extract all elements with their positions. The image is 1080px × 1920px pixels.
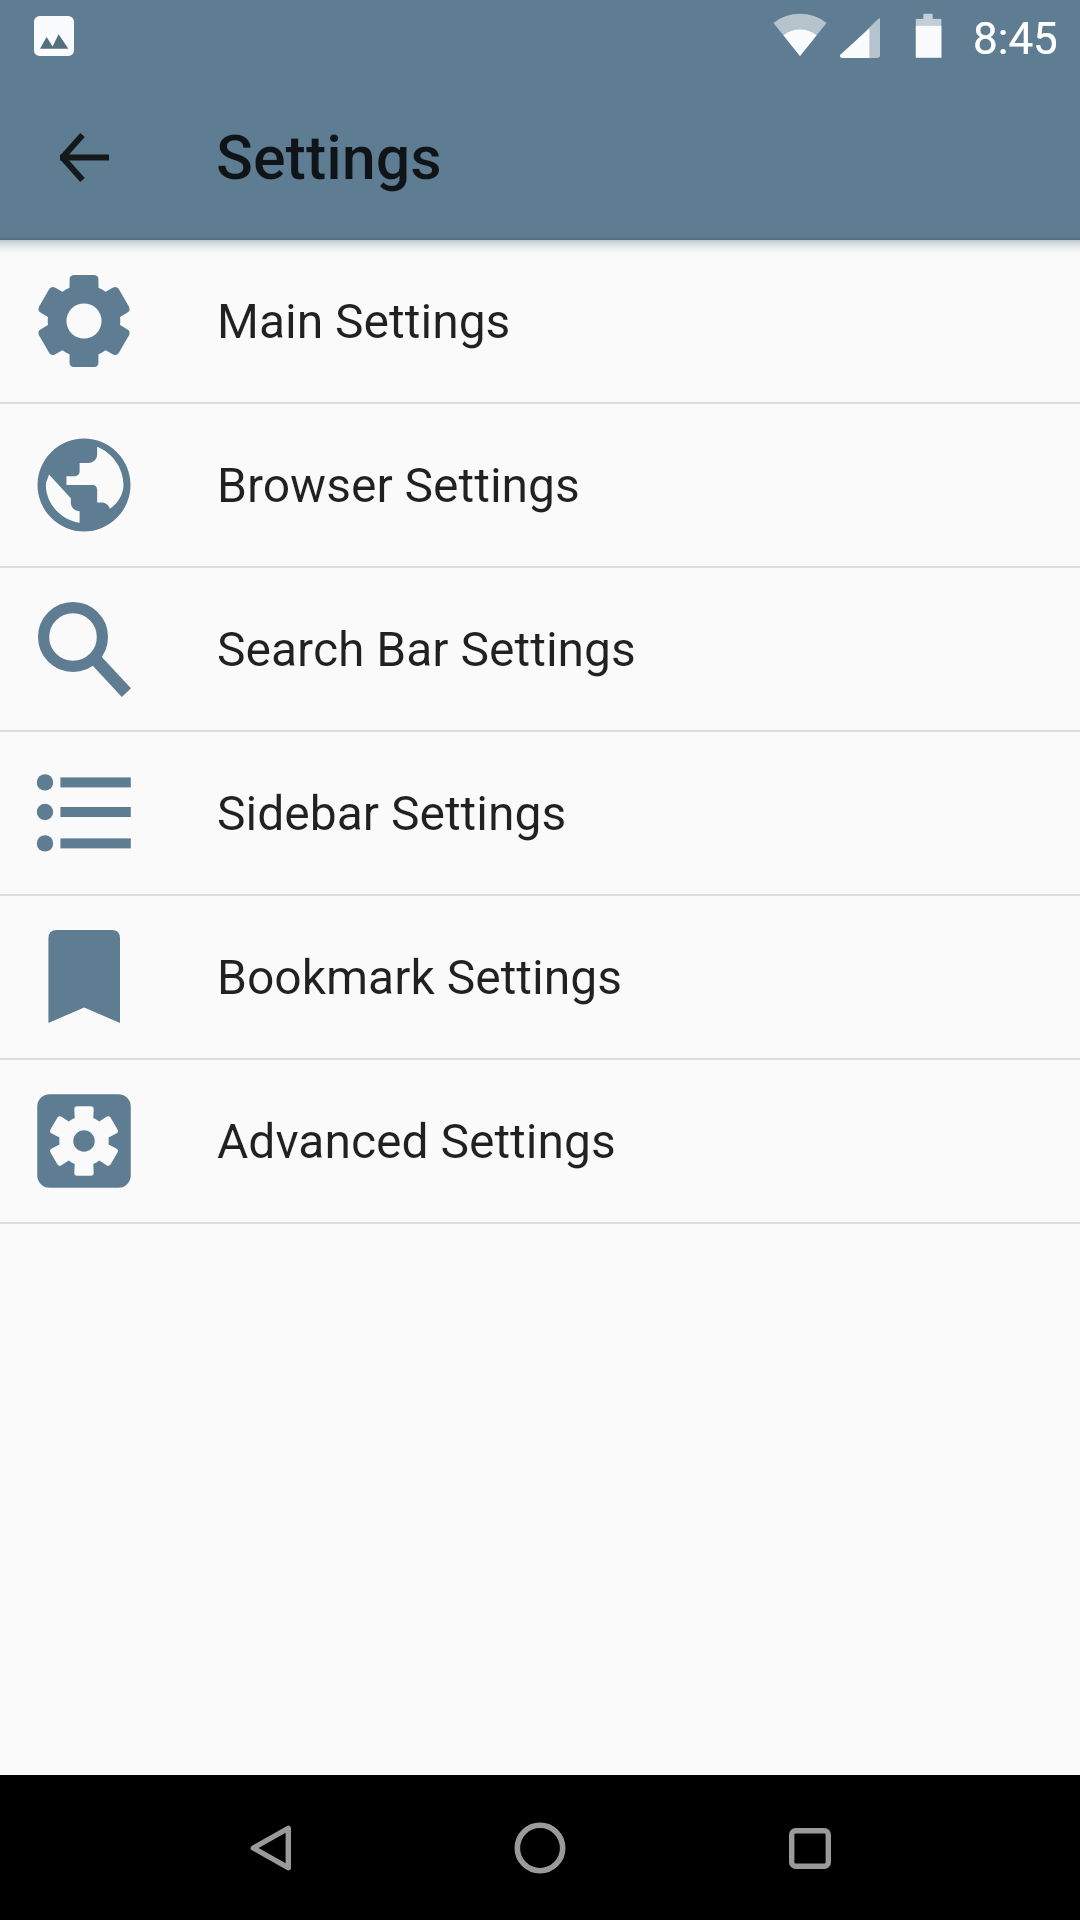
staticText: 8:45 [973,13,1058,65]
button[interactable]: Advanced Settings [0,1060,1080,1222]
button[interactable]: Back [200,1778,340,1918]
staticText: Browser Settings [217,457,580,513]
staticText: Sidebar Settings [217,785,567,841]
staticText: Advanced Settings [217,1113,616,1169]
button[interactable]: Bookmark Settings [0,896,1080,1058]
staticText: Bookmark Settings [217,949,622,1005]
staticText: Search Bar Settings [217,621,636,677]
button[interactable]: Search Bar Settings [0,568,1080,730]
button[interactable]: Navigate up [12,85,156,229]
staticText: Main Settings [217,293,511,349]
button[interactable]: Home [470,1778,610,1918]
button[interactable]: Browser Settings [0,404,1080,566]
button[interactable]: Main Settings [0,240,1080,402]
button[interactable]: Recent apps [740,1778,880,1918]
button[interactable]: Sidebar Settings [0,732,1080,894]
staticText: Settings [216,122,442,193]
